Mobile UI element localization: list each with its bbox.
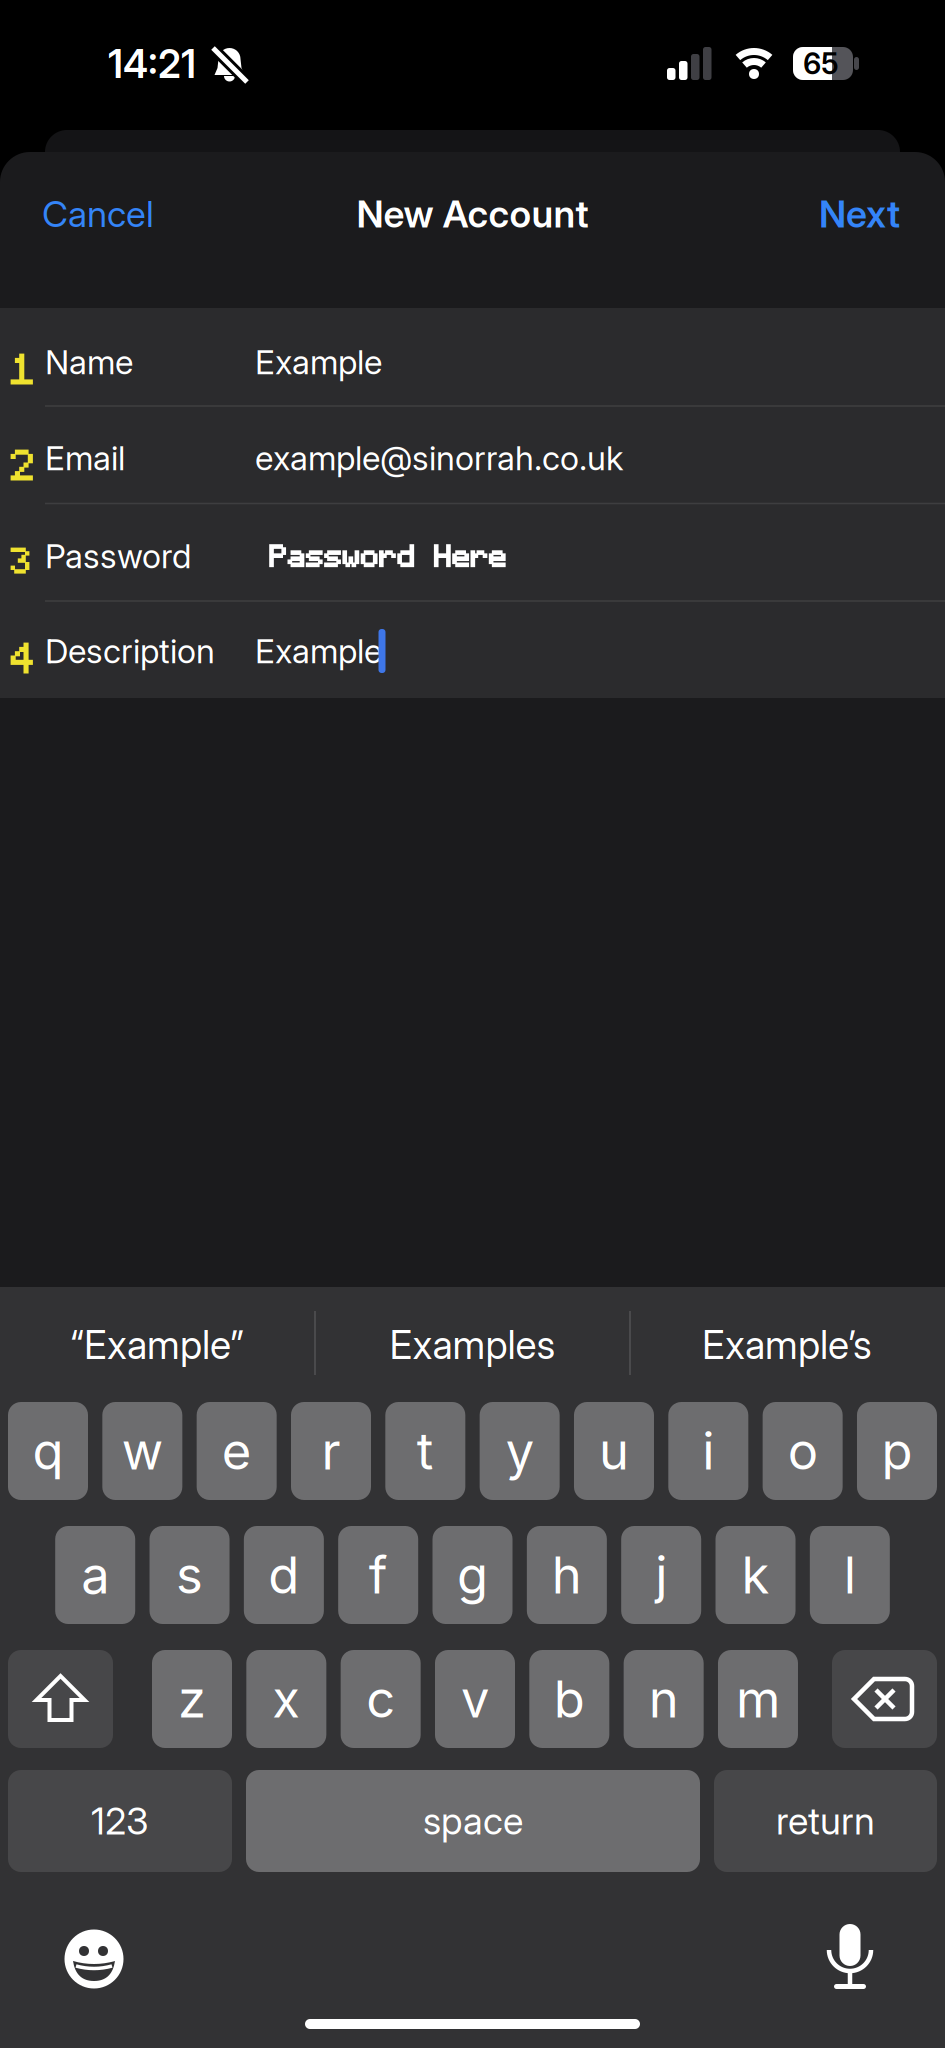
staticText: a — [81, 1545, 109, 1605]
staticText: i — [702, 1421, 714, 1481]
button[interactable]: m — [718, 1650, 798, 1748]
button[interactable]: n — [624, 1650, 704, 1748]
button[interactable]: p — [857, 1402, 937, 1500]
staticText: return — [776, 1799, 875, 1843]
staticText: z — [178, 1669, 206, 1729]
button[interactable]: a — [55, 1526, 135, 1624]
staticText: p — [881, 1421, 912, 1481]
button[interactable]: Cancel — [42, 169, 262, 259]
button[interactable]: r — [291, 1402, 371, 1500]
button[interactable]: s — [149, 1526, 229, 1624]
staticText: Examples — [389, 1322, 555, 1368]
staticText: o — [788, 1421, 818, 1481]
button[interactable]: q — [8, 1402, 88, 1500]
button[interactable]: o — [763, 1402, 843, 1500]
staticText: 65 — [803, 46, 839, 81]
button[interactable]: Emoji — [62, 1927, 126, 1991]
button[interactable]: h — [527, 1526, 607, 1624]
button[interactable]: j — [621, 1526, 701, 1624]
button[interactable]: t — [385, 1402, 465, 1500]
button[interactable]: e — [197, 1402, 277, 1500]
staticText: example@sinorrah.co.uk — [255, 438, 623, 478]
button[interactable]: i — [668, 1402, 748, 1500]
staticText: space — [423, 1799, 523, 1843]
staticText: s — [176, 1545, 203, 1605]
button[interactable]: Examples — [317, 1295, 627, 1395]
button[interactable]: f — [338, 1526, 418, 1624]
staticText: Description — [45, 631, 215, 671]
staticText: l — [844, 1545, 856, 1605]
button[interactable]: l — [810, 1526, 890, 1624]
staticText: y — [506, 1421, 534, 1481]
button[interactable]: “Example” — [2, 1295, 312, 1395]
button[interactable]: Delete — [832, 1650, 937, 1748]
staticText: Email — [45, 438, 125, 478]
staticText: n — [649, 1669, 679, 1729]
button[interactable]: v — [435, 1650, 515, 1748]
staticText: w — [122, 1421, 163, 1481]
staticText: Cancel — [42, 193, 154, 235]
button[interactable]: Name — [0, 313, 945, 410]
staticText: “Example” — [70, 1322, 244, 1368]
button[interactable]: Shift — [8, 1650, 113, 1748]
staticText: New Account — [356, 192, 588, 236]
button[interactable]: u — [574, 1402, 654, 1500]
button[interactable]: Next — [680, 169, 900, 259]
button[interactable]: space — [246, 1770, 700, 1872]
button[interactable]: y — [480, 1402, 560, 1500]
button[interactable]: Password — [0, 507, 945, 604]
staticText: x — [272, 1669, 300, 1729]
staticText: b — [554, 1669, 585, 1729]
button[interactable]: d — [244, 1526, 324, 1624]
staticText: Example — [255, 631, 382, 671]
staticText: u — [599, 1421, 629, 1481]
staticText: g — [457, 1545, 488, 1605]
button[interactable]: g — [432, 1526, 512, 1624]
staticText: c — [366, 1669, 395, 1729]
staticText: v — [461, 1669, 489, 1729]
button[interactable]: c — [341, 1650, 421, 1748]
staticText: Name — [45, 342, 133, 382]
staticText: Next — [819, 192, 900, 236]
button[interactable]: b — [529, 1650, 609, 1748]
staticText: j — [655, 1545, 667, 1605]
staticText: r — [321, 1421, 340, 1481]
button[interactable]: return — [714, 1770, 937, 1872]
staticText: d — [268, 1545, 299, 1605]
staticText: 14:21 — [108, 41, 196, 87]
staticText: k — [741, 1545, 769, 1605]
button[interactable]: Example’s — [632, 1295, 942, 1395]
button[interactable]: Dictation — [819, 1922, 881, 1992]
staticText: m — [736, 1669, 780, 1729]
staticText: Password — [45, 536, 191, 576]
staticText: q — [32, 1421, 63, 1481]
staticText: Example — [255, 342, 382, 382]
button[interactable]: Description — [0, 602, 945, 699]
staticText: t — [417, 1421, 434, 1481]
button[interactable]: Email — [0, 409, 945, 506]
button[interactable]: 123 — [8, 1770, 232, 1872]
staticText: h — [552, 1545, 582, 1605]
button[interactable]: k — [715, 1526, 795, 1624]
staticText: f — [369, 1545, 388, 1605]
staticText: Example’s — [702, 1322, 872, 1368]
button[interactable]: z — [152, 1650, 232, 1748]
staticText: 123 — [91, 1799, 149, 1843]
button[interactable]: w — [102, 1402, 182, 1500]
button[interactable]: x — [246, 1650, 326, 1748]
staticText: e — [222, 1421, 252, 1481]
